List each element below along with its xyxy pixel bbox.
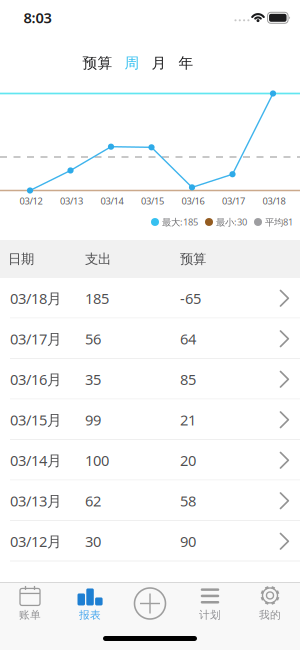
staticText: 03/13月: [10, 491, 62, 510]
staticText: 03/12月: [10, 531, 62, 551]
staticText: 03/18: [262, 195, 285, 207]
button[interactable]: 年: [178, 48, 193, 78]
button[interactable]: 03/12月: [0, 521, 300, 561]
staticText: 90: [180, 531, 196, 551]
staticText: 58: [180, 491, 196, 510]
staticText: 35: [85, 369, 101, 389]
button[interactable]: 03/15月: [0, 399, 300, 440]
staticText: 平均81: [265, 216, 293, 228]
staticText: 预算: [82, 54, 112, 72]
button[interactable]: 账单: [0, 583, 60, 623]
staticText: 日期: [8, 251, 34, 267]
staticText: 56: [85, 329, 101, 348]
staticText: 支出: [85, 251, 111, 267]
button[interactable]: 03/14月: [0, 440, 300, 480]
button[interactable]: 周: [124, 48, 139, 78]
staticText: 03/15月: [10, 410, 62, 429]
staticText: 21: [180, 410, 196, 429]
staticText: 预算: [180, 251, 206, 267]
button[interactable]: 03/16月: [0, 359, 300, 399]
staticText: 03/16月: [10, 369, 62, 389]
button[interactable]: 03/18月: [0, 278, 300, 318]
button[interactable]: 预算: [82, 48, 112, 78]
staticText: 8:03: [23, 8, 51, 27]
staticText: 64: [180, 329, 196, 348]
staticText: 03/18月: [10, 288, 62, 308]
staticText: 99: [85, 410, 101, 429]
staticText: 月: [151, 54, 166, 72]
staticText: 03/14月: [10, 450, 62, 470]
staticText: 85: [180, 369, 196, 389]
staticText: 03/15: [141, 195, 164, 207]
button[interactable]: 03/17月: [0, 318, 300, 359]
staticText: 最小:30: [216, 216, 247, 228]
staticText: 03/17: [222, 195, 245, 207]
staticText: 20: [180, 450, 196, 470]
staticText: 62: [85, 491, 101, 510]
staticText: 03/13: [60, 195, 83, 207]
staticText: 03/16: [181, 195, 204, 207]
staticText: -65: [180, 288, 201, 308]
staticText: 30: [85, 531, 101, 551]
button[interactable]: 我的: [240, 583, 300, 623]
button[interactable]: 添加: [120, 583, 180, 623]
staticText: 账单: [19, 608, 41, 621]
staticText: 周: [124, 54, 139, 72]
staticText: 185: [85, 288, 109, 308]
staticText: 报表: [79, 608, 101, 621]
staticText: 03/17月: [10, 329, 62, 348]
staticText: 计划: [199, 608, 221, 621]
staticText: 03/14: [100, 195, 123, 207]
button[interactable]: 报表: [60, 583, 120, 623]
staticText: 03/12: [19, 195, 42, 207]
staticText: 年: [178, 54, 193, 72]
button[interactable]: 03/13月: [0, 480, 300, 521]
staticText: 最大:185: [162, 216, 198, 228]
staticText: 100: [85, 450, 109, 470]
button[interactable]: 计划: [180, 583, 240, 623]
button[interactable]: 月: [151, 48, 166, 78]
staticText: 我的: [259, 608, 281, 621]
